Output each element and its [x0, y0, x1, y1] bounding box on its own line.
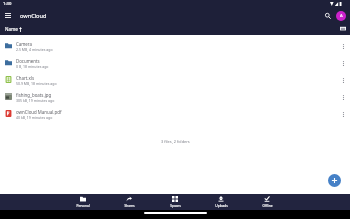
staticText: Personal — [76, 204, 90, 208]
button[interactable]: Switch list or grid view — [338, 24, 347, 33]
button[interactable]: Uploads — [198, 194, 244, 210]
staticText: Camera — [16, 41, 33, 47]
staticText: Name — [5, 26, 18, 32]
button[interactable]: Open navigation menu — [3, 11, 12, 20]
staticText: Documents — [16, 58, 40, 64]
button[interactable]: Account — [336, 11, 346, 21]
staticText: 40 kB, 19 minutes ago — [16, 115, 53, 120]
staticText: 1:30 — [3, 1, 12, 7]
staticText: Offline — [262, 204, 273, 208]
button[interactable]: Chart.xls — [0, 71, 350, 88]
button[interactable]: Camera — [0, 37, 350, 54]
staticText: Spaces — [170, 204, 181, 208]
staticText: ownCloud — [20, 12, 47, 20]
staticText: fishing_boats.jpg — [16, 92, 52, 98]
staticText: 2.5 MB, 4 minutes ago — [16, 47, 53, 52]
button[interactable]: Add — [328, 174, 341, 187]
button[interactable]: Shares — [106, 194, 152, 210]
staticText: 50.9 MB, 18 minutes ago — [16, 81, 57, 86]
staticText: Shares — [124, 204, 135, 208]
staticText: Uploads — [215, 204, 228, 208]
button[interactable]: More options — [338, 75, 348, 85]
staticText: A — [340, 13, 343, 19]
button[interactable]: More options — [338, 109, 348, 119]
staticText: ownCloud Manual.pdf — [16, 109, 62, 115]
button[interactable]: More options — [338, 41, 348, 51]
button[interactable]: Offline — [244, 194, 290, 210]
button[interactable]: fishing_boats.jpg — [0, 88, 350, 105]
button[interactable]: Documents — [0, 54, 350, 71]
staticText: 0 B, 18 minutes ago — [16, 64, 49, 69]
button[interactable]: More options — [338, 92, 348, 102]
button[interactable]: ownCloud Manual.pdf — [0, 105, 350, 122]
button[interactable]: Spaces — [152, 194, 198, 210]
staticText: Chart.xls — [16, 75, 35, 81]
button[interactable]: Search — [322, 10, 333, 21]
staticText: 305 kB, 19 minutes ago — [16, 98, 55, 103]
button[interactable]: More options — [338, 58, 348, 68]
button[interactable]: Personal — [60, 194, 106, 210]
button[interactable]: Name — [5, 24, 22, 34]
staticText: 3 files, 2 folders — [161, 139, 190, 144]
